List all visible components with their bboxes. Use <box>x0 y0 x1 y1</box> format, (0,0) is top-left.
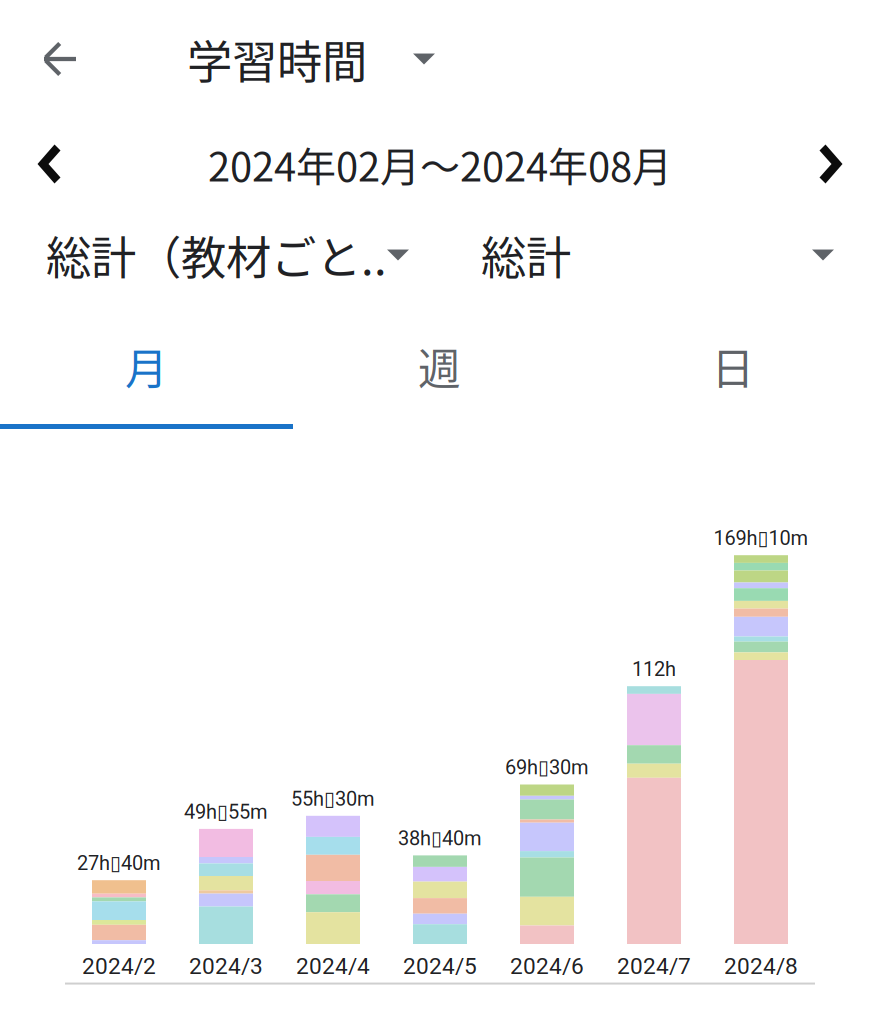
staticText: 49h▯55m <box>184 800 268 824</box>
staticText: 2024/8 <box>724 953 798 980</box>
staticText: 学習時間 <box>187 26 367 92</box>
staticText: 169h▯10m <box>713 526 808 550</box>
button[interactable]: Back <box>20 19 100 99</box>
staticText: 2024/7 <box>617 953 691 980</box>
staticText: 38h▯40m <box>398 827 482 850</box>
button[interactable]: Previous period <box>19 131 79 197</box>
staticText: 総計（教材ごと.. <box>46 222 387 288</box>
button[interactable]: 月 <box>0 300 293 429</box>
staticText: 69h▯30m <box>505 756 589 779</box>
button[interactable]: 学習時間 <box>187 19 435 99</box>
button[interactable]: 日 <box>586 300 880 429</box>
staticText: 2024/5 <box>403 953 477 980</box>
staticText: 112h <box>632 657 676 681</box>
staticText: 2024/2 <box>82 953 156 980</box>
staticText: 2024年02月〜2024年08月 <box>208 135 672 193</box>
staticText: 2024/4 <box>296 953 370 980</box>
button[interactable]: Next period <box>801 131 861 197</box>
staticText: 27h▯40m <box>77 851 161 875</box>
button[interactable]: Change grouping <box>800 217 846 293</box>
staticText: 55h▯30m <box>291 787 375 810</box>
staticText: 総計 <box>481 222 571 288</box>
staticText: 月 <box>125 335 168 397</box>
staticText: 日 <box>711 335 754 397</box>
staticText: 週 <box>418 335 461 397</box>
staticText: 2024/3 <box>189 953 263 980</box>
button[interactable]: 総計（教材ごと.. <box>46 217 409 293</box>
staticText: 2024/6 <box>510 953 584 980</box>
button[interactable]: 週 <box>293 300 586 429</box>
button[interactable]: 総計 <box>481 217 571 293</box>
